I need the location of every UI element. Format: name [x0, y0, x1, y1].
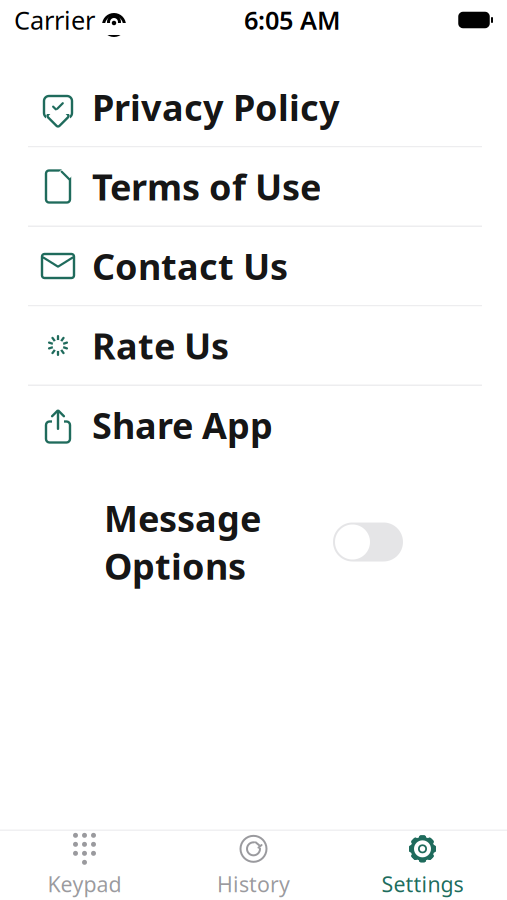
staticText: Share App: [92, 401, 273, 449]
staticText: Contact Us: [92, 242, 288, 290]
staticText: Keypad: [47, 870, 121, 898]
staticText: Privacy Policy: [92, 83, 340, 131]
button[interactable]: Message Options: [0, 520, 507, 564]
staticText: Carrier: [14, 3, 95, 37]
staticText: History: [217, 870, 290, 898]
staticText: Message Options: [104, 494, 261, 590]
button[interactable]: Terms of Use: [0, 147, 507, 225]
button[interactable]: Rate Us: [0, 306, 507, 384]
staticText: Settings: [381, 870, 463, 898]
button[interactable]: Privacy Policy: [0, 68, 507, 146]
button[interactable]: Contact Us: [0, 227, 507, 305]
button[interactable]: Share App: [0, 386, 507, 464]
staticText: Rate Us: [92, 322, 229, 369]
button[interactable]: Keypad: [0, 830, 169, 900]
button[interactable]: Settings: [338, 830, 507, 900]
staticText: 6:05 AM: [244, 3, 341, 37]
staticText: Terms of Use: [92, 163, 321, 210]
button[interactable]: History: [169, 830, 338, 900]
